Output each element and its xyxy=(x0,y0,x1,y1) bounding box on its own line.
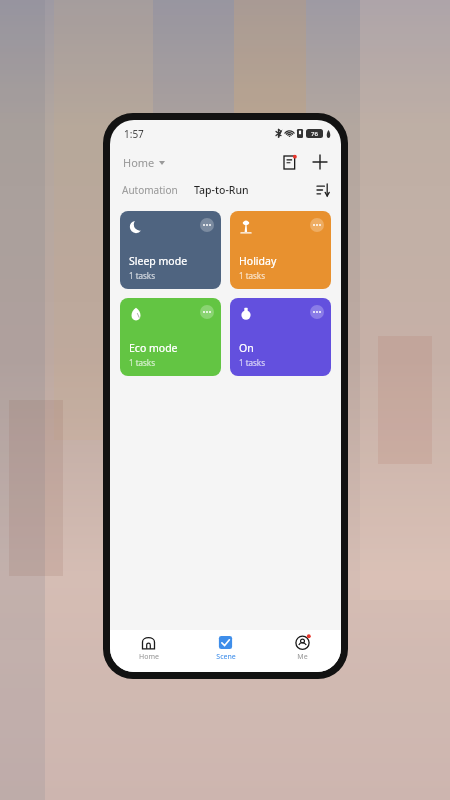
button[interactable]: Tap-to-Run xyxy=(190,180,253,200)
button[interactable]: Home xyxy=(120,152,168,173)
button[interactable]: Sort xyxy=(313,180,333,200)
button[interactable]: Home xyxy=(110,630,187,672)
staticText: 1 tasks xyxy=(239,357,265,368)
button[interactable]: More options xyxy=(120,298,221,376)
staticText: Scene xyxy=(216,652,236,662)
staticText: 1:57 xyxy=(124,127,144,141)
button[interactable]: More options xyxy=(230,211,331,289)
staticText: 1 tasks xyxy=(129,270,155,281)
staticText: 76 xyxy=(311,130,318,138)
staticText: Tap-to-Run xyxy=(194,183,249,197)
button[interactable]: More options xyxy=(200,218,214,232)
button[interactable]: More options xyxy=(310,218,324,232)
staticText: Sleep mode xyxy=(129,254,188,268)
staticText: Home xyxy=(139,652,159,662)
staticText: 1 tasks xyxy=(129,357,155,368)
staticText: Me xyxy=(297,652,308,662)
staticText: Eco mode xyxy=(129,341,178,355)
button[interactable]: Messages xyxy=(277,149,303,175)
staticText: Home xyxy=(123,155,155,170)
button[interactable]: Add xyxy=(307,149,333,175)
staticText: On xyxy=(239,341,254,355)
staticText: Holiday xyxy=(239,254,277,268)
button[interactable]: More options xyxy=(310,305,324,319)
button[interactable]: Automation xyxy=(118,180,182,200)
button[interactable]: More options xyxy=(120,211,221,289)
staticText: 1 tasks xyxy=(239,270,265,281)
staticText: Automation xyxy=(122,183,178,197)
button[interactable]: More options xyxy=(230,298,331,376)
button[interactable]: More options xyxy=(200,305,214,319)
button[interactable]: Scene xyxy=(187,630,264,672)
button[interactable]: Me xyxy=(264,630,341,672)
